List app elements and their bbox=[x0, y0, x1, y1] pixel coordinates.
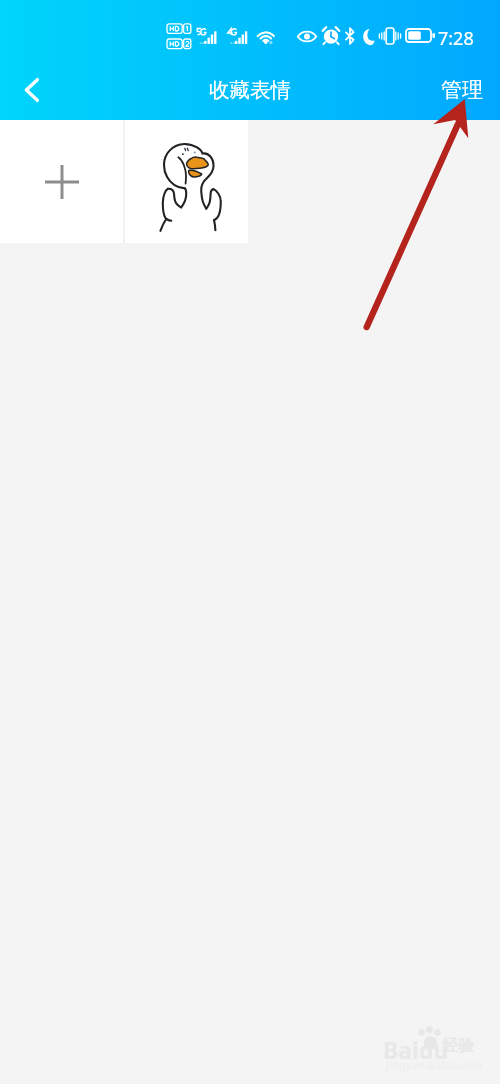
staticText: 7:28 bbox=[438, 26, 474, 51]
button[interactable]: Duck sticker bbox=[125, 120, 248, 243]
button[interactable]: 管理 bbox=[423, 60, 500, 120]
button[interactable]: Back bbox=[0, 60, 62, 120]
button[interactable]: Add emoji bbox=[0, 120, 123, 243]
staticText: Baidu bbox=[383, 1034, 449, 1065]
staticText: 经验 bbox=[442, 1036, 474, 1056]
staticText: 管理 bbox=[441, 77, 483, 103]
staticText: 收藏表情 bbox=[209, 77, 291, 103]
